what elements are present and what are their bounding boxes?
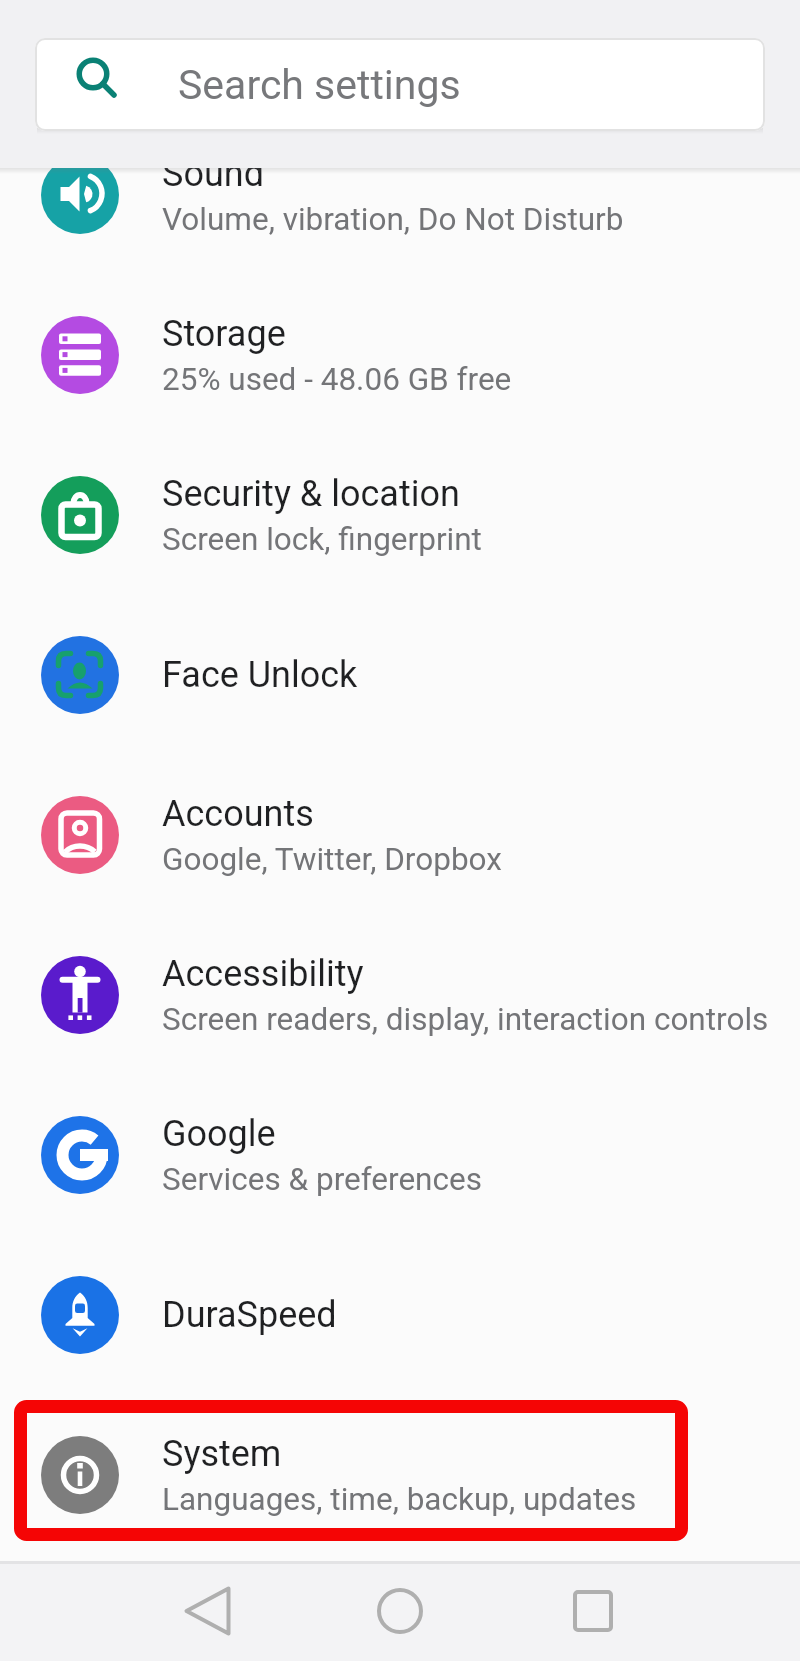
button[interactable]: System — [0, 1395, 800, 1555]
button[interactable]: Google — [0, 1075, 800, 1235]
button[interactable]: Security & location — [0, 435, 800, 595]
staticText: Services & preferences — [162, 1161, 482, 1198]
button[interactable] — [549, 1567, 637, 1655]
staticText: Accessibility — [162, 953, 364, 995]
staticText: Languages, time, backup, updates — [162, 1481, 637, 1518]
button[interactable]: DuraSpeed — [0, 1235, 800, 1395]
button[interactable]: Accounts — [0, 755, 800, 915]
staticText: Security & location — [162, 473, 460, 515]
staticText: Accounts — [162, 793, 314, 835]
button[interactable]: Search settings — [35, 38, 765, 131]
staticText: Sound — [162, 153, 264, 195]
button[interactable]: Face Unlock — [0, 595, 800, 755]
button[interactable]: Storage — [0, 275, 800, 435]
button[interactable] — [163, 1567, 251, 1655]
staticText: Volume, vibration, Do Not Disturb — [162, 201, 624, 238]
staticText: Google — [162, 1113, 276, 1155]
button[interactable] — [356, 1567, 444, 1655]
staticText: Screen readers, display, interaction con… — [162, 1001, 769, 1038]
staticText: 25% used - 48.06 GB free — [162, 361, 512, 398]
staticText: Screen lock, fingerprint — [162, 521, 482, 558]
staticText: Search settings — [178, 61, 461, 109]
staticText: Storage — [162, 313, 286, 355]
button[interactable]: Sound — [0, 115, 800, 275]
staticText: Google, Twitter, Dropbox — [162, 841, 502, 878]
staticText: Face Unlock — [162, 654, 358, 696]
button[interactable]: Accessibility — [0, 915, 800, 1075]
staticText: System — [162, 1433, 282, 1475]
staticText: DuraSpeed — [162, 1294, 337, 1336]
